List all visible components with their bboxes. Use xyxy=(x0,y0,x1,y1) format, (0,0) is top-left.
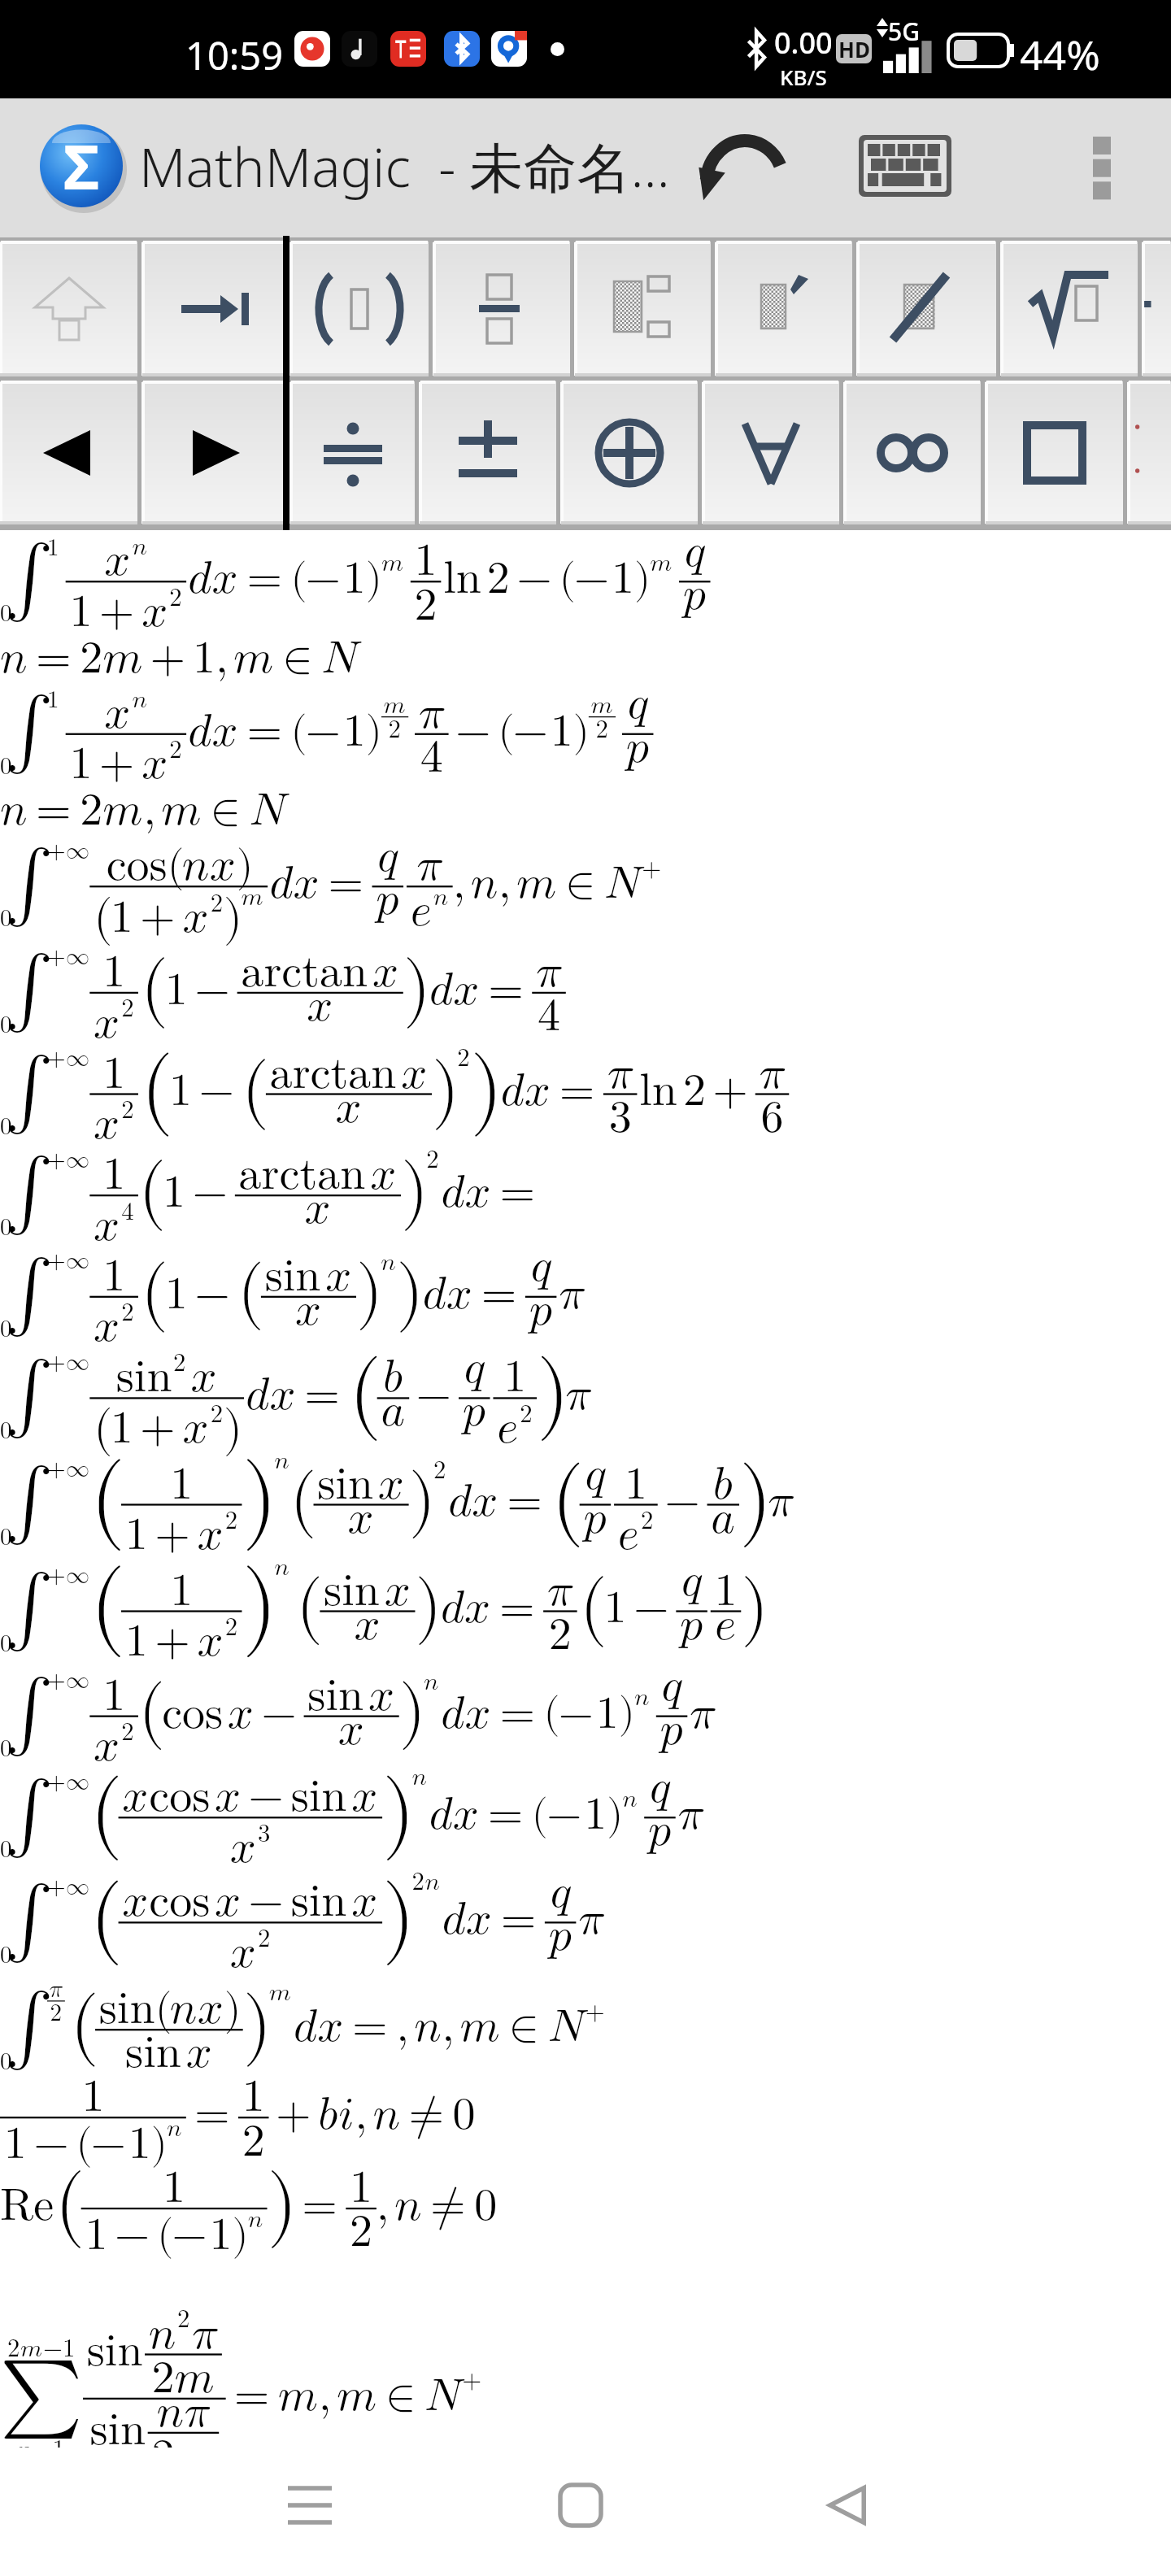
button[interactable]: tool 0_0 xyxy=(0,241,137,376)
button[interactable]: tool 1_2 xyxy=(290,381,415,524)
staticText: KB/S xyxy=(780,63,827,91)
button[interactable]: More options xyxy=(1057,117,1147,215)
button[interactable]: tool 1_8 xyxy=(1128,381,1171,524)
button[interactable]: tool 1_6 xyxy=(844,381,981,524)
staticText: Σ xyxy=(63,124,100,208)
staticText: 5G xyxy=(888,15,920,48)
button[interactable]: Undo xyxy=(683,117,805,215)
button[interactable]: tool 0_5 xyxy=(716,241,852,376)
button[interactable]: tool 0_1 xyxy=(142,241,285,376)
button[interactable]: tool 0_7 xyxy=(1001,241,1138,376)
button[interactable]: Keyboard xyxy=(844,117,966,215)
staticText: HD xyxy=(838,35,870,63)
button[interactable]: Recent apps xyxy=(261,2456,359,2554)
button[interactable]: tool 1_4 xyxy=(561,381,698,524)
button[interactable]: tool 0_2 xyxy=(290,241,429,376)
button[interactable]: tool 0_3 xyxy=(433,241,570,376)
staticText: 44% xyxy=(1020,27,1100,82)
button[interactable]: tool 0_6 xyxy=(857,241,996,376)
staticText: MathMagic - 未命名… xyxy=(139,129,670,202)
button[interactable]: tool 1_1 xyxy=(142,381,285,524)
button[interactable]: Home xyxy=(532,2456,629,2554)
button[interactable]: Back xyxy=(799,2456,896,2554)
button[interactable]: tool 1_7 xyxy=(986,381,1123,524)
button[interactable]: tool 0_8 xyxy=(1143,241,1171,376)
button[interactable]: tool 1_5 xyxy=(703,381,839,524)
staticText: 10:59 xyxy=(185,29,284,81)
button[interactable]: tool 1_0 xyxy=(0,381,137,524)
button[interactable]: tool 1_3 xyxy=(420,381,556,524)
button[interactable]: tool 0_4 xyxy=(575,241,711,376)
staticText: 0.00 xyxy=(774,23,833,63)
